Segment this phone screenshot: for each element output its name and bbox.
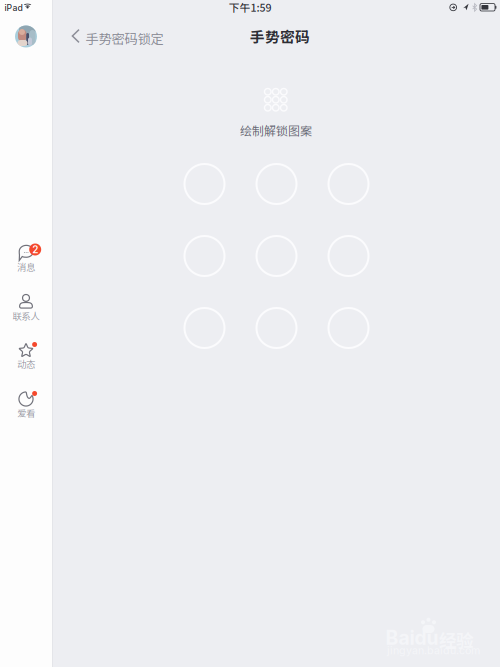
staticText: 手势密码 [250,25,310,47]
staticText: 手势密码锁定 [85,28,163,48]
button[interactable]: Profile [0,25,52,47]
staticText: 2 [32,243,38,256]
staticText: 爱看 [17,406,35,419]
button[interactable]: Pattern dot 2 [247,155,305,213]
staticText: 动态 [17,357,35,370]
button[interactable]: Pattern dot 8 [247,299,305,357]
staticText: 消息 [17,260,35,273]
button[interactable]: Pattern dot 4 [175,227,233,285]
staticText: 下午1:59 [228,0,271,15]
button[interactable]: Pattern dot 6 [319,227,377,285]
button[interactable]: 联系人 [0,294,52,330]
button[interactable]: Pattern dot 5 [247,227,305,285]
button[interactable]: Pattern dot 9 [319,299,377,357]
staticText: 绘制解锁图案 [240,121,312,139]
button[interactable]: 动态 [0,342,52,378]
button[interactable]: Pattern dot 1 [175,155,233,213]
staticText: iPad [4,3,22,13]
button[interactable]: Pattern dot 7 [175,299,233,357]
button[interactable]: 2 [0,245,52,281]
staticText: Baidu [385,626,438,649]
button[interactable]: Pattern dot 3 [319,155,377,213]
button[interactable]: 爱看 [0,391,52,427]
button[interactable]: 手势密码锁定 [64,23,156,49]
staticText: 联系人 [12,309,39,322]
